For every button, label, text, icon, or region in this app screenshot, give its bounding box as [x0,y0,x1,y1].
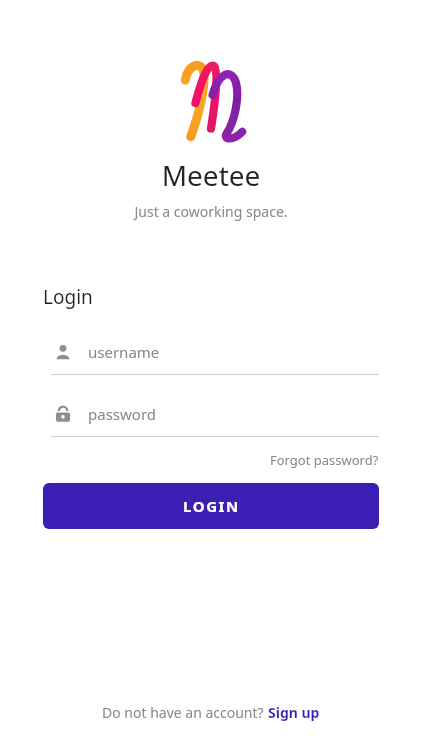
button[interactable]: password [43,397,379,437]
staticText: Meetee [0,156,422,194]
button[interactable]: Sign up [268,703,320,722]
button[interactable]: Forgot password? [270,451,379,469]
button[interactable]: username [43,335,379,375]
staticText: LOGIN [183,496,240,516]
button[interactable]: LOGIN [43,483,379,529]
staticText: Login [43,284,93,310]
staticText: password [88,404,156,424]
staticText: Just a coworking space. [0,202,422,221]
staticText: Do not have an account? [102,703,268,722]
staticText: username [88,342,160,362]
